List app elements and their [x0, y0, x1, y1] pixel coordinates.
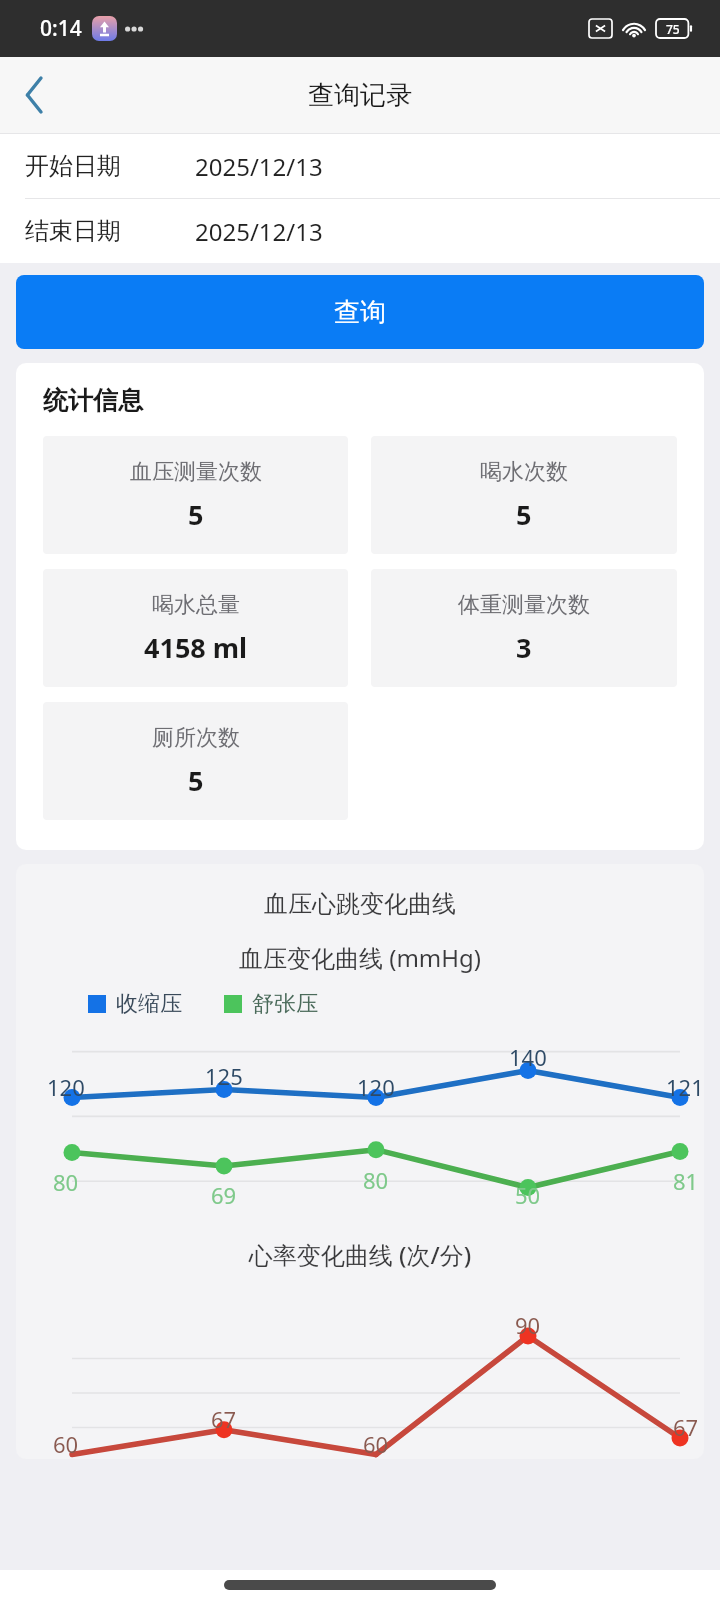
staticText: 5	[188, 762, 204, 799]
staticText: 开始日期	[25, 151, 121, 181]
staticText: 2025/12/13	[195, 150, 323, 183]
staticText: 心率变化曲线 (次/分)	[16, 1238, 704, 1271]
button[interactable]: 体重测量次数	[371, 569, 677, 687]
button[interactable]: 查询	[16, 275, 704, 349]
staticText: 血压心跳变化曲线	[16, 889, 704, 919]
staticText: 69	[211, 1180, 237, 1210]
staticText: 50	[515, 1180, 541, 1210]
button[interactable]: 厕所次数	[43, 702, 348, 820]
button[interactable]: 血压测量次数	[43, 436, 348, 554]
staticText: 查询	[334, 296, 386, 329]
staticText: 体重测量次数	[458, 591, 590, 619]
staticText: 血压测量次数	[130, 458, 262, 486]
staticText: 75	[666, 21, 680, 37]
staticText: 121	[666, 1072, 704, 1102]
staticText: 5	[516, 496, 532, 533]
button[interactable]: 喝水次数	[371, 436, 677, 554]
staticText: 结束日期	[25, 216, 121, 246]
staticText: 125	[205, 1061, 243, 1091]
staticText: 3	[516, 629, 532, 666]
button[interactable]: 结束日期	[0, 199, 720, 263]
staticText: 收缩压	[116, 990, 182, 1018]
staticText: 0:14	[40, 14, 82, 43]
staticText: 81	[673, 1166, 699, 1196]
staticText: 120	[357, 1072, 395, 1102]
staticText: 80	[363, 1165, 389, 1195]
staticText: 120	[47, 1072, 85, 1102]
staticText: 喝水总量	[152, 591, 240, 619]
staticText: 2025/12/13	[195, 215, 323, 248]
staticText: 喝水次数	[480, 458, 568, 486]
staticText: 90	[515, 1310, 541, 1340]
staticText: 4158 ml	[144, 629, 248, 666]
button[interactable]: Back	[0, 57, 70, 133]
staticText: 60	[53, 1429, 79, 1459]
staticText: 80	[53, 1167, 79, 1197]
staticText: 厕所次数	[152, 724, 240, 752]
staticText: 查询记录	[308, 79, 412, 112]
staticText: 舒张压	[252, 990, 318, 1018]
staticText: 67	[211, 1404, 237, 1434]
staticText: 5	[188, 496, 204, 533]
staticText: 血压变化曲线 (mmHg)	[16, 941, 704, 974]
staticText: 67	[673, 1412, 699, 1442]
staticText: 统计信息	[43, 385, 143, 416]
staticText: 60	[363, 1429, 389, 1459]
button[interactable]: 喝水总量	[43, 569, 348, 687]
staticText: 140	[509, 1042, 547, 1072]
button[interactable]: 开始日期	[0, 134, 720, 198]
